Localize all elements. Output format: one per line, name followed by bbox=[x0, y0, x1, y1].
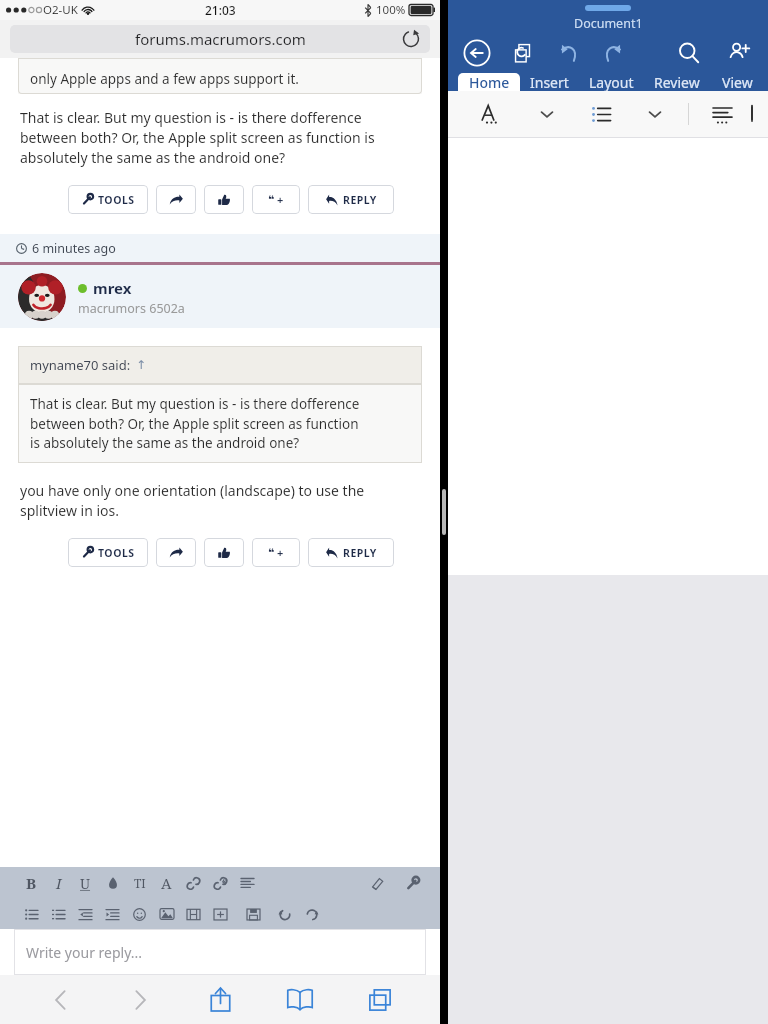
button[interactable]: Write your reply... bbox=[14, 929, 426, 975]
button[interactable]: Numbered list bbox=[45, 901, 72, 927]
staticText: Insert bbox=[530, 73, 569, 91]
staticText: TI bbox=[134, 875, 146, 891]
button[interactable]: Expand list options bbox=[640, 97, 670, 131]
button[interactable]: Emoji bbox=[126, 901, 153, 927]
button[interactable]: View bbox=[710, 73, 764, 91]
button[interactable]: Forward bbox=[110, 975, 170, 1024]
button[interactable]: Redo bbox=[598, 38, 628, 68]
staticText: That is clear. But my question is - is t… bbox=[30, 395, 370, 452]
staticText: ❝ bbox=[268, 546, 275, 559]
button[interactable]: Share bbox=[190, 975, 250, 1024]
staticText: + bbox=[277, 545, 284, 560]
staticText: REPLY bbox=[343, 193, 377, 207]
staticText: O2-UK bbox=[43, 2, 78, 18]
button[interactable]: Home bbox=[458, 73, 520, 91]
staticText: macrumors 6502a bbox=[78, 300, 185, 317]
button[interactable]: Bulleted list bbox=[586, 97, 616, 131]
button[interactable]: TOOLS bbox=[68, 185, 148, 214]
button[interactable]: REPLY bbox=[308, 185, 394, 214]
staticText: 6 minutes ago bbox=[32, 240, 116, 257]
button[interactable]: More tools bbox=[399, 870, 426, 896]
staticText: 21:03 bbox=[205, 2, 236, 18]
staticText: only Apple apps and a few apps support i… bbox=[30, 70, 299, 88]
button[interactable]: Font bbox=[153, 870, 180, 896]
button[interactable]: Text colour bbox=[99, 870, 126, 896]
staticText: View bbox=[722, 73, 753, 91]
button[interactable]: Insert link bbox=[180, 870, 207, 896]
button[interactable]: Outdent bbox=[72, 901, 99, 927]
button[interactable]: Back bbox=[462, 38, 492, 68]
button[interactable]: Bold bbox=[18, 870, 45, 896]
staticText: + bbox=[277, 192, 284, 207]
button[interactable]: Tabs bbox=[350, 975, 410, 1024]
button[interactable]: Share bbox=[156, 538, 196, 567]
staticText: you have only one orientation (landscape… bbox=[20, 481, 378, 520]
button[interactable] bbox=[18, 273, 66, 321]
button[interactable]: Expand font options bbox=[532, 97, 562, 131]
staticText: forums.macrumors.com bbox=[135, 29, 306, 49]
button[interactable]: REPLY bbox=[308, 538, 394, 567]
button[interactable]: Remove link bbox=[207, 870, 234, 896]
button[interactable]: Share bbox=[156, 185, 196, 214]
button[interactable]: Insert bbox=[520, 73, 578, 91]
button[interactable]: Reload bbox=[400, 28, 422, 50]
button[interactable]: Font formatting bbox=[476, 97, 506, 131]
button[interactable]: Quote bbox=[252, 538, 300, 567]
button[interactable]: Undo bbox=[554, 38, 584, 68]
button[interactable]: Bookmarks bbox=[270, 975, 330, 1024]
button[interactable]: Save draft bbox=[240, 901, 267, 927]
button[interactable]: Like bbox=[204, 185, 244, 214]
staticText: I bbox=[56, 873, 62, 893]
staticText: 100% bbox=[376, 2, 406, 18]
staticText: Review bbox=[654, 73, 700, 91]
button[interactable]: Paragraph formatting bbox=[707, 97, 737, 131]
staticText: REPLY bbox=[343, 546, 377, 560]
staticText: B bbox=[26, 873, 37, 893]
staticText: TOOLS bbox=[98, 546, 135, 560]
button[interactable]: Share with people bbox=[724, 38, 754, 68]
button[interactable]: Review bbox=[644, 73, 710, 91]
staticText: ↑ bbox=[136, 358, 147, 372]
button[interactable]: Underline bbox=[72, 870, 99, 896]
button[interactable]: Redo bbox=[298, 901, 325, 927]
staticText: Home bbox=[469, 73, 510, 91]
button[interactable]: Align bbox=[234, 870, 261, 896]
button[interactable]: Back bbox=[30, 975, 90, 1024]
staticText: That is clear. But my question is - is t… bbox=[20, 108, 380, 167]
button[interactable]: Undo bbox=[271, 901, 298, 927]
button[interactable]: Sync bbox=[508, 38, 538, 68]
staticText: Document1 bbox=[574, 15, 643, 32]
staticText: Write your reply... bbox=[26, 943, 143, 962]
button[interactable]: Bulleted list bbox=[18, 901, 45, 927]
staticText: myname70 said: bbox=[30, 356, 131, 374]
button[interactable]: Insert image bbox=[153, 901, 180, 927]
button[interactable]: Font size bbox=[126, 870, 153, 896]
button[interactable]: Insert video bbox=[180, 901, 207, 927]
staticText: U bbox=[80, 874, 91, 893]
button[interactable]: Insert table bbox=[207, 901, 234, 927]
button[interactable]: Clear formatting bbox=[362, 870, 389, 896]
button[interactable]: Like bbox=[204, 538, 244, 567]
staticText: TOOLS bbox=[98, 193, 135, 207]
button[interactable]: Search bbox=[674, 38, 704, 68]
button[interactable]: Layout bbox=[578, 73, 644, 91]
staticText: Layout bbox=[589, 73, 634, 91]
button[interactable]: Quote bbox=[252, 185, 300, 214]
button[interactable]: TOOLS bbox=[68, 538, 148, 567]
button[interactable]: Italic bbox=[45, 870, 72, 896]
staticText: ❝ bbox=[268, 193, 275, 206]
staticText: mrex bbox=[93, 278, 132, 298]
button[interactable]: Indent bbox=[99, 901, 126, 927]
button[interactable]: forums.macrumors.com bbox=[10, 25, 430, 53]
staticText: A bbox=[161, 873, 172, 893]
